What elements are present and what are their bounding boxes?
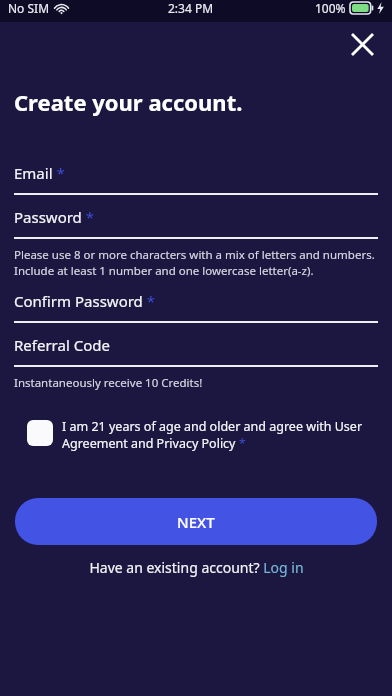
staticText: Email * bbox=[14, 163, 65, 183]
staticText: Password * bbox=[14, 207, 95, 227]
staticText: No SIM bbox=[8, 0, 50, 16]
staticText: Have an existing account? Log in bbox=[89, 558, 304, 577]
staticText: NEXT bbox=[177, 512, 215, 532]
staticText: Instantaneously receive 10 Credits! bbox=[14, 375, 203, 391]
button[interactable]: NEXT bbox=[15, 498, 377, 545]
staticText: I am 21 years of age and older and agree… bbox=[62, 418, 378, 452]
button[interactable]: Password * bbox=[14, 207, 378, 239]
staticText: Confirm Password * bbox=[14, 291, 155, 311]
staticText: Referral Code bbox=[14, 335, 110, 355]
staticText: 2:34 PM bbox=[168, 0, 214, 16]
button[interactable]: I am 21 years of age and older and agree… bbox=[14, 418, 378, 452]
button[interactable]: Email * bbox=[14, 163, 378, 195]
button[interactable]: Close bbox=[345, 27, 379, 61]
button[interactable]: Have an existing account? Log in bbox=[89, 558, 304, 577]
button[interactable]: Referral Code bbox=[14, 335, 378, 367]
staticText: Create your account. bbox=[14, 87, 243, 117]
staticText: Please use 8 or more characters with a m… bbox=[14, 247, 375, 278]
button[interactable]: Confirm Password * bbox=[14, 291, 378, 323]
staticText: 100% bbox=[315, 0, 346, 16]
